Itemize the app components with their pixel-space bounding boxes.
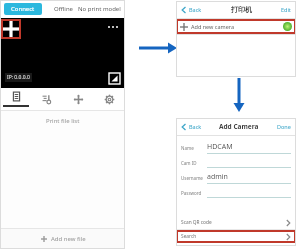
button[interactable]: Files bbox=[0, 88, 32, 110]
button[interactable]: Move bbox=[63, 88, 94, 110]
staticText: Search bbox=[181, 233, 197, 240]
staticText: Add new file bbox=[51, 235, 86, 243]
button[interactable]: Add new camera bbox=[176, 19, 296, 34]
staticText: Back bbox=[189, 6, 202, 13]
staticText: Back bbox=[189, 123, 202, 130]
staticText: IP: 0.0.0.0 bbox=[7, 74, 30, 81]
button[interactable]: Add bbox=[1, 19, 21, 39]
staticText: Add new camera bbox=[191, 23, 235, 30]
button[interactable]: Done bbox=[277, 123, 291, 130]
button[interactable]: Settings bbox=[94, 88, 125, 110]
staticText: admin bbox=[207, 172, 228, 182]
staticText: Edit bbox=[281, 6, 291, 13]
button[interactable]: Fullscreen bbox=[109, 73, 120, 84]
staticText: Password bbox=[181, 190, 202, 196]
button[interactable]: Back bbox=[181, 6, 202, 13]
button[interactable]: Back bbox=[181, 123, 202, 130]
staticText: Done bbox=[277, 123, 291, 130]
staticText: Name bbox=[181, 145, 194, 151]
button[interactable]: Edit bbox=[281, 6, 291, 13]
button[interactable]: Scan QR code bbox=[176, 216, 296, 229]
button[interactable]: Connect bbox=[4, 3, 42, 15]
staticText: Connect bbox=[11, 5, 35, 13]
staticText: Add Camera bbox=[219, 122, 259, 131]
staticText: Username bbox=[181, 175, 203, 181]
staticText: Print file list bbox=[46, 117, 80, 125]
staticText: Offline bbox=[54, 5, 74, 13]
button[interactable]: Add new file bbox=[0, 229, 125, 249]
button[interactable]: More options bbox=[108, 26, 118, 28]
staticText: Scan QR code bbox=[181, 219, 212, 226]
button[interactable]: Temperature bbox=[32, 88, 63, 110]
staticText: HDCAM bbox=[207, 142, 233, 152]
staticText: 打印机 bbox=[231, 5, 252, 14]
staticText: No print model bbox=[78, 5, 121, 13]
button[interactable]: Search bbox=[176, 230, 296, 243]
staticText: Cam ID bbox=[181, 160, 197, 166]
